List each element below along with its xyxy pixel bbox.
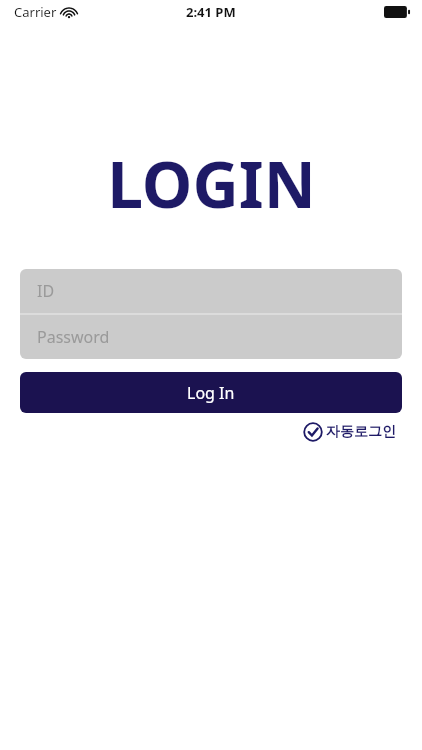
staticText: Password [37, 326, 110, 348]
other: Auto login checkbox [303, 422, 323, 442]
staticText: LOGIN [107, 140, 316, 227]
staticText: 자동로그인 [326, 423, 396, 441]
staticText: 2:41 PM [186, 3, 236, 21]
button[interactable]: ID [20, 269, 402, 313]
button[interactable]: Log In [20, 372, 402, 413]
button[interactable]: Password [20, 315, 402, 359]
staticText: Log In [187, 382, 235, 404]
staticText: ID [37, 280, 55, 302]
staticText: Carrier [14, 3, 57, 21]
button[interactable]: Auto login checkbox [303, 422, 396, 442]
